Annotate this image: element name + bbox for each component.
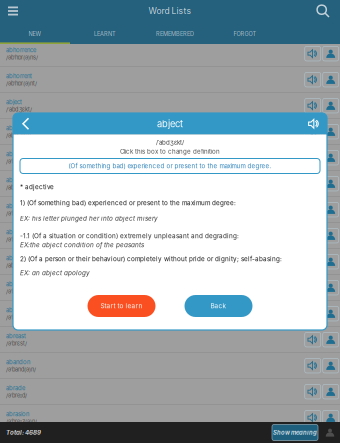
button[interactable]: abrasive	[0, 301, 340, 326]
staticText: Click this box to change definition	[120, 148, 220, 155]
staticText: (Of something bad) experienced or presen…	[68, 162, 271, 170]
staticText: /əˈbɔːtɪv/	[6, 288, 29, 295]
button[interactable]: Profile for abjure	[323, 124, 339, 139]
button[interactable]: abject	[0, 93, 340, 118]
staticText: Word Lists	[148, 6, 191, 16]
button[interactable]: Profile for abortive	[323, 280, 339, 295]
staticText: /əˈbɒm(ɪ)nəb(ə)l/	[6, 236, 48, 243]
button[interactable]: Profile for abridge	[323, 436, 339, 443]
button[interactable]: Pronounce abject	[305, 98, 321, 113]
staticText: Show meaning	[273, 429, 317, 436]
staticText: /ˈabdʒɛkt/	[6, 106, 32, 113]
staticText: /abnɪˈɡeɪʃ(ə)n/	[6, 184, 42, 191]
staticText: abortive	[6, 280, 28, 288]
button[interactable]: Pronounce ablution	[305, 150, 321, 165]
button[interactable]: (Of something bad) experienced or presen…	[20, 158, 320, 173]
staticText: 1) (Of something bad) experienced or pre…	[20, 199, 236, 207]
staticText: EX: an abject apology	[20, 269, 90, 277]
button[interactable]: Pronounce abreast	[305, 332, 321, 347]
button[interactable]: Pronounce abrasion	[305, 410, 321, 425]
staticText: abrasion	[6, 410, 29, 418]
button[interactable]: Menu	[1, 0, 25, 22]
button[interactable]: Profile for abrasion	[323, 410, 339, 425]
staticText: /əˈbluːʃ(ə)n/	[6, 158, 35, 165]
staticText: 2) (Of a person or their behaviour) comp…	[20, 255, 282, 263]
button[interactable]: abortive	[0, 275, 340, 300]
button[interactable]: Profile for abominable	[323, 228, 339, 243]
button[interactable]: Show meaning	[272, 424, 318, 440]
staticText: abject	[6, 98, 22, 106]
staticText: ablution	[6, 150, 27, 158]
staticText: NEW	[28, 31, 41, 37]
staticText: LEARNT	[94, 31, 116, 37]
button[interactable]: FORGOT	[210, 22, 280, 44]
staticText: Start to learn	[100, 302, 142, 310]
button[interactable]: Profile for ablution	[323, 150, 339, 165]
staticText: abrasive	[6, 306, 28, 314]
button[interactable]: abrasion	[0, 405, 340, 430]
button[interactable]: abhorrence	[0, 41, 340, 66]
button[interactable]: Pronounce abhorrence	[305, 46, 321, 61]
button[interactable]: abominable	[0, 223, 340, 248]
staticText: abhorrence	[6, 46, 36, 54]
button[interactable]: aboriginal	[0, 249, 340, 274]
button[interactable]: Pronounce abandon	[305, 358, 321, 373]
button[interactable]: Pronounce abrade	[305, 384, 321, 399]
button[interactable]: Start to learn	[87, 295, 155, 317]
button[interactable]: Profile for abhorrent	[323, 72, 339, 87]
staticText: /əbˈdʒʊə/	[6, 132, 31, 139]
button[interactable]: Profile for abandon	[323, 358, 339, 373]
button[interactable]: ablution	[0, 145, 340, 170]
button[interactable]: NEW	[0, 22, 70, 44]
staticText: /əbˈhɒr(ə)nt/	[6, 80, 37, 87]
staticText: abject	[157, 118, 183, 129]
staticText: /əˈbreɪd/	[6, 392, 27, 399]
button[interactable]: abreast	[0, 327, 340, 352]
button[interactable]: Pronounce abject	[301, 113, 327, 135]
staticText: FORGOT	[233, 31, 256, 37]
staticText: abjure	[6, 124, 22, 132]
button[interactable]: abnegation	[0, 171, 340, 196]
staticText: abhorrent	[6, 72, 32, 80]
staticText: /əˈbreɪsɪv/	[6, 314, 32, 321]
button[interactable]: Profile for abrade	[323, 384, 339, 399]
button[interactable]: abolish	[0, 197, 340, 222]
staticText: abandon	[6, 358, 30, 366]
button[interactable]: Pronounce abridge	[305, 436, 321, 443]
button[interactable]: Profile for abject	[323, 98, 339, 113]
button[interactable]: Profile for aboriginal	[323, 254, 339, 269]
staticText: EX:the abject condition of the peasants	[20, 241, 144, 249]
button[interactable]: Search	[310, 0, 336, 22]
staticText: aboriginal	[6, 254, 32, 262]
button[interactable]: Profile for abreast	[323, 332, 339, 347]
staticText: /əˈbrɛst/	[6, 340, 27, 347]
button[interactable]: Pronounce abhorrent	[305, 72, 321, 87]
button[interactable]: Profile for abhorrence	[323, 46, 339, 61]
button[interactable]: abridge	[0, 431, 340, 443]
button[interactable]: Back	[184, 295, 252, 317]
button[interactable]: LEARNT	[70, 22, 140, 44]
button[interactable]: abjure	[0, 119, 340, 144]
button[interactable]: Profile for abnegation	[323, 176, 339, 191]
button[interactable]: abrade	[0, 379, 340, 404]
button[interactable]: Pronounce abjure	[305, 124, 321, 139]
button[interactable]: abandon	[0, 353, 340, 378]
button[interactable]: abhorrent	[0, 67, 340, 92]
staticText: /əbˈhɒr(ə)ns/	[6, 54, 38, 61]
staticText: EX: his letter plunged her into abject m…	[20, 215, 158, 222]
staticText: abreast	[6, 332, 26, 340]
staticText: /abəˈrɪdʒɪn(ə)l/	[6, 262, 44, 269]
button[interactable]: REMEMBERED	[140, 22, 210, 44]
button[interactable]: Back	[13, 113, 39, 135]
button[interactable]: Profile for abolish	[323, 202, 339, 217]
button[interactable]: Profile for abrasive	[323, 306, 339, 321]
staticText: abominable	[6, 228, 37, 236]
button[interactable]: Profile	[322, 423, 338, 441]
